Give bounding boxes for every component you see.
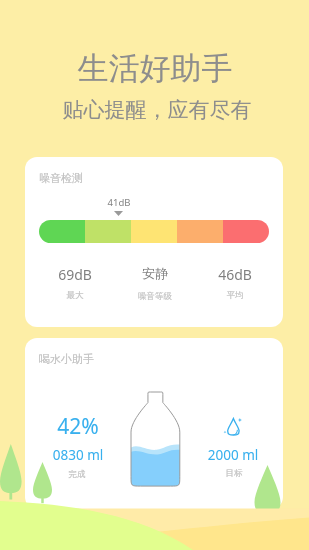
staticText: 噪音检测 — [39, 171, 83, 185]
staticText: 完成 — [25, 469, 197, 480]
staticText: 目标 — [114, 468, 283, 479]
staticText: 噪音等级 — [35, 291, 275, 302]
staticText: 42% — [25, 412, 198, 441]
staticText: 最大 — [25, 290, 195, 301]
staticText: 喝水小助手 — [39, 352, 94, 366]
staticText: 46dB — [115, 265, 283, 284]
other: Daily water goal — [220, 415, 247, 442]
staticText: 贴心提醒，应有尽有 — [37, 97, 277, 123]
staticText: 69dB — [25, 265, 195, 284]
staticText: 平均 — [115, 290, 283, 301]
staticText: 安静 — [35, 265, 275, 281]
staticText: 41dB — [25, 196, 239, 209]
staticText: 0830 ml — [25, 446, 198, 464]
button[interactable]: 喝水小助手 — [25, 338, 283, 509]
staticText: 生活好助手 — [35, 49, 275, 88]
staticText: 2000 ml — [113, 446, 283, 464]
button[interactable]: 噪音检测 — [25, 157, 283, 327]
